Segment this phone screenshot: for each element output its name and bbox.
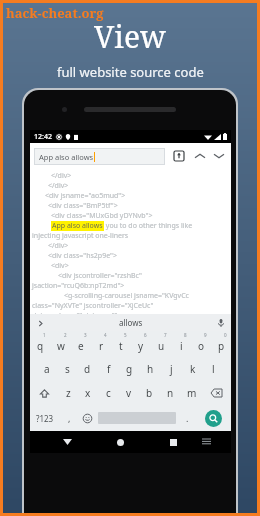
staticText: h	[147, 362, 154, 376]
button[interactable]: Back	[57, 432, 77, 452]
button[interactable]: Previous result	[192, 148, 208, 164]
button[interactable]: Open in new tab	[171, 148, 187, 164]
staticText: 6	[144, 332, 147, 338]
staticText: g	[126, 362, 133, 376]
button[interactable]: 7	[151, 331, 171, 356]
button[interactable]: ?123	[30, 405, 60, 431]
staticText: </div>	[48, 241, 69, 251]
button[interactable]: 4	[91, 331, 111, 356]
button[interactable]: k	[182, 356, 203, 381]
staticText: e	[78, 339, 84, 353]
staticText: n	[167, 386, 174, 400]
button[interactable]: 6	[131, 331, 151, 356]
button[interactable]: Next result	[211, 148, 227, 164]
staticText: App also allows	[39, 152, 94, 162]
staticText: w	[57, 339, 65, 353]
staticText: injecting javascript one-liners	[32, 231, 129, 241]
button[interactable]: 8	[171, 331, 191, 356]
staticText: </div>	[48, 181, 69, 191]
staticText: q	[37, 339, 44, 353]
button[interactable]: .	[178, 405, 196, 431]
staticText: 1	[43, 332, 46, 338]
staticText: class="NyXVTe" jscontroller="XjCeUc"	[32, 301, 154, 311]
staticText: i	[180, 339, 183, 353]
staticText: jsaction="rcuQ6b:npT2md">	[32, 281, 125, 291]
staticText: p	[218, 339, 225, 353]
button[interactable]: App also allows	[34, 148, 165, 165]
staticText: d	[84, 362, 91, 376]
button[interactable]: m	[181, 381, 202, 405]
staticText: data-restore="" data-ss=""	[32, 311, 118, 314]
staticText: x	[85, 386, 91, 400]
staticText: b	[146, 386, 153, 400]
button[interactable]: v	[118, 381, 139, 405]
button[interactable]: c	[98, 381, 118, 405]
staticText: allows	[119, 317, 143, 328]
staticText: ?123	[36, 413, 54, 424]
staticText: 7	[164, 332, 167, 338]
staticText: ,	[68, 412, 71, 424]
button[interactable]: Backspace	[202, 381, 231, 405]
staticText: a	[44, 362, 50, 376]
staticText: u	[158, 339, 165, 353]
staticText: 4	[104, 332, 107, 338]
button[interactable]: b	[139, 381, 160, 405]
button[interactable]: h	[140, 356, 161, 381]
staticText: .	[186, 412, 189, 424]
button[interactable]: Keyboard	[196, 432, 216, 452]
staticText: View	[94, 16, 166, 57]
button[interactable]: 5	[111, 331, 131, 356]
staticText: v	[126, 386, 132, 400]
button[interactable]: 1	[30, 331, 51, 356]
staticText: z	[66, 386, 71, 400]
staticText: j	[170, 362, 173, 376]
button[interactable]: s	[57, 356, 77, 381]
button[interactable]: Home	[110, 432, 130, 452]
staticText: <div class="MUxGbd yDYNvb">	[51, 211, 153, 221]
button[interactable]: Shift	[30, 381, 58, 405]
button[interactable]: l	[203, 356, 224, 381]
staticText: you to do other things like	[104, 221, 193, 231]
staticText: f	[107, 362, 111, 376]
button[interactable]: Voice input	[215, 317, 227, 329]
staticText: <div class="BmP5tf">	[48, 201, 118, 211]
button[interactable]: Emoji	[78, 405, 96, 431]
staticText: <div>	[51, 261, 69, 271]
button[interactable]: x	[78, 381, 98, 405]
staticText: s	[65, 362, 70, 376]
staticText: 3	[84, 332, 87, 338]
button[interactable]: 3	[71, 331, 91, 356]
button[interactable]: d	[77, 356, 98, 381]
staticText: c	[106, 386, 111, 400]
staticText: k	[190, 362, 196, 376]
button[interactable]: 0	[211, 331, 231, 356]
button[interactable]: n	[160, 381, 181, 405]
staticText: 12:42	[34, 132, 52, 142]
button[interactable]: Recents	[163, 432, 183, 452]
button[interactable]: z	[58, 381, 78, 405]
staticText: 0	[224, 332, 227, 338]
staticText: y	[138, 339, 144, 353]
staticText: l	[212, 362, 215, 376]
button[interactable]: ,	[60, 405, 78, 431]
button[interactable]: Expand suggestions	[34, 317, 46, 329]
staticText: <div class="hs2p9e">	[48, 251, 117, 261]
staticText: r	[99, 339, 104, 353]
button[interactable]: 9	[191, 331, 211, 356]
button[interactable]: f	[98, 356, 119, 381]
button[interactable]: Search	[205, 410, 222, 427]
staticText: 8	[184, 332, 187, 338]
staticText: 5	[124, 332, 127, 338]
button[interactable]: j	[161, 356, 182, 381]
staticText: hack-cheat.org	[6, 4, 104, 22]
button[interactable]: g	[119, 356, 140, 381]
staticText: o	[198, 339, 205, 353]
button[interactable]: a	[37, 356, 57, 381]
staticText: m	[187, 386, 197, 400]
staticText: </div>	[51, 171, 72, 181]
staticText: <g-scrolling-carousel jsname="KVgvCc	[64, 291, 189, 301]
staticText: 2	[64, 332, 67, 338]
staticText: App also allows	[52, 221, 103, 231]
button[interactable]: 2	[51, 331, 71, 356]
